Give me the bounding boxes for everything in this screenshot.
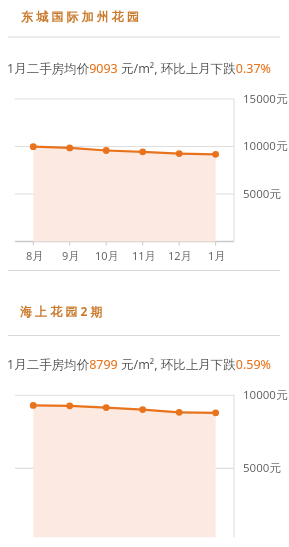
button[interactable]: 海上花园2期 <box>20 303 106 319</box>
staticText: 1月二手房均价9093 元/m², 环比上月下跌0.37% <box>7 60 272 77</box>
staticText: 东城国际加州花园 <box>21 9 142 24</box>
staticText: 11月 <box>132 248 156 263</box>
staticText: 12月 <box>168 248 192 263</box>
staticText: 1月 <box>208 248 226 263</box>
staticText: 8月 <box>26 248 44 263</box>
staticText: 5000元 <box>243 186 281 202</box>
staticText: 9月 <box>62 248 80 263</box>
staticText: 15000元 <box>243 91 288 107</box>
staticText: 10000元 <box>243 387 288 403</box>
button[interactable]: 东城国际加州花园 <box>21 9 142 24</box>
staticText: 海上花园2期 <box>20 303 106 319</box>
staticText: 10月 <box>95 248 119 263</box>
staticText: 1月二手房均价8799 元/m², 环比上月下跌0.59% <box>7 356 272 373</box>
staticText: 5000元 <box>243 460 281 476</box>
staticText: 10000元 <box>243 138 288 154</box>
